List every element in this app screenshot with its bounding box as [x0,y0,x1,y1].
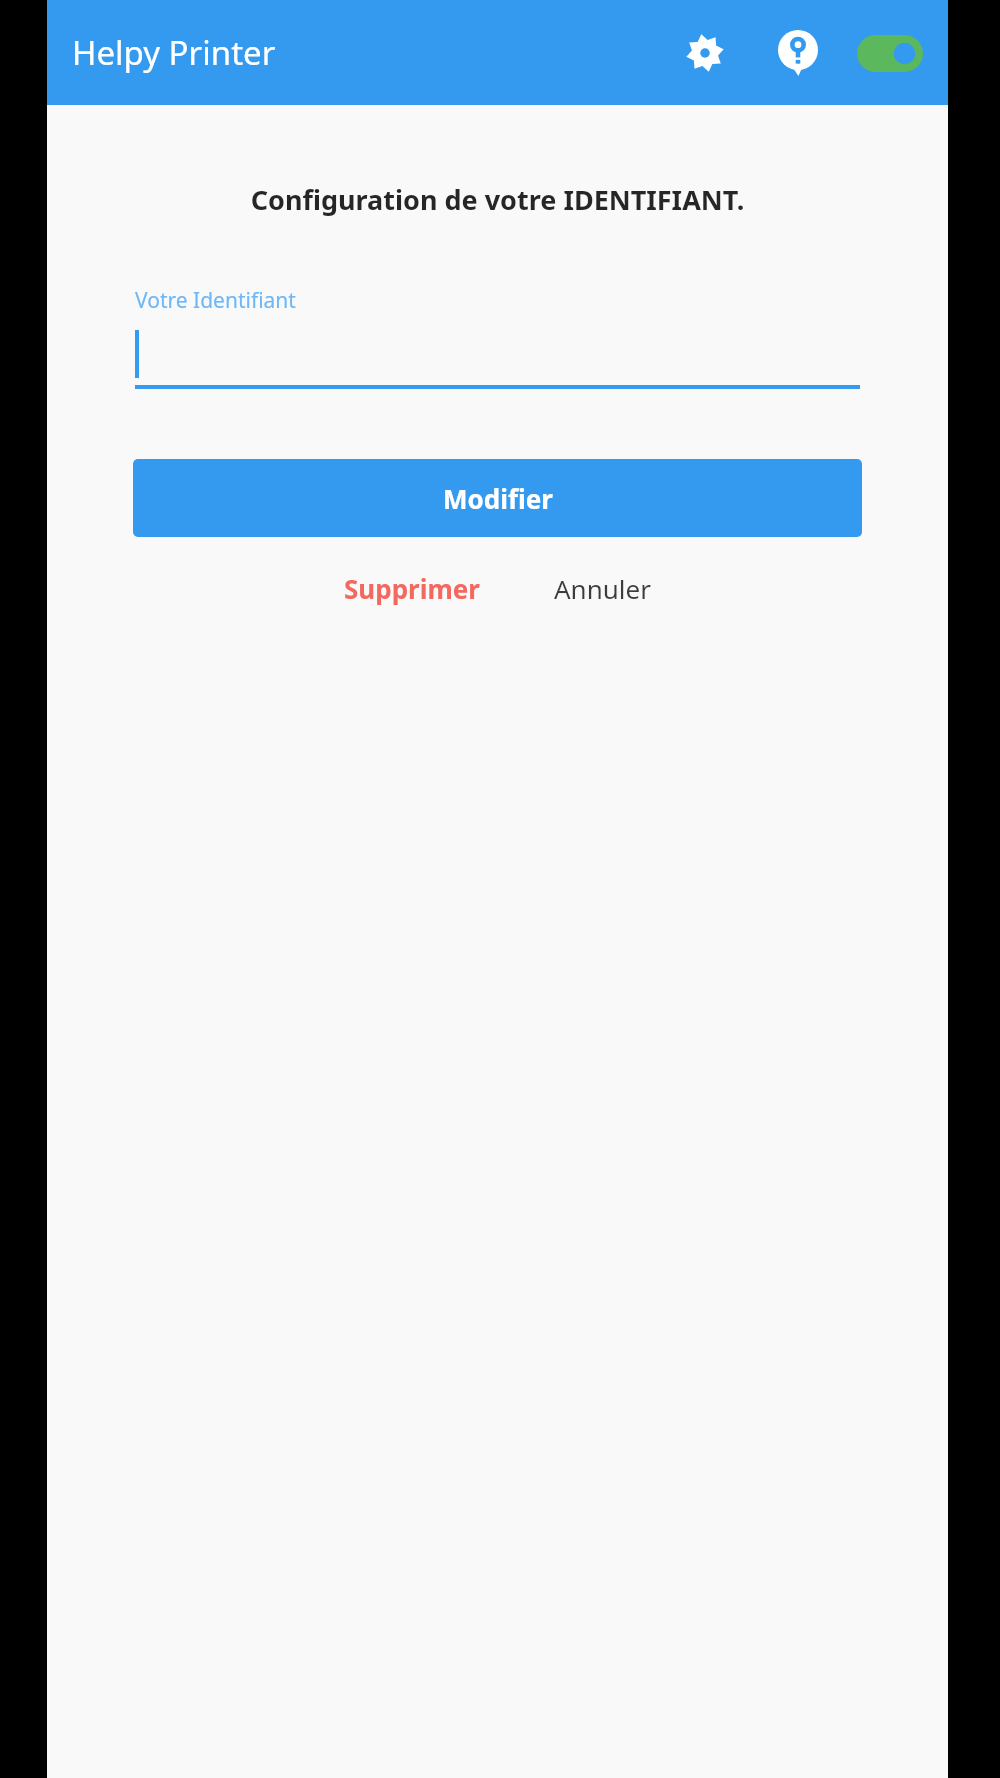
staticText: Votre Identifiant [135,286,296,315]
staticText: Annuler [554,571,651,606]
button[interactable]: Votre Identifiant [135,286,860,389]
button[interactable]: Help [766,21,830,85]
button[interactable]: Supprimer [330,563,494,614]
staticText: Configuration de votre IDENTIFIANT. [47,181,948,218]
staticText: Modifier [443,481,553,516]
staticText: Supprimer [344,571,480,606]
button[interactable]: Printer on/off toggle [850,21,930,85]
button[interactable]: Settings [673,21,737,85]
button[interactable]: Annuler [540,563,665,614]
staticText: Helpy Printer [72,30,276,75]
button[interactable]: Modifier [133,459,862,537]
